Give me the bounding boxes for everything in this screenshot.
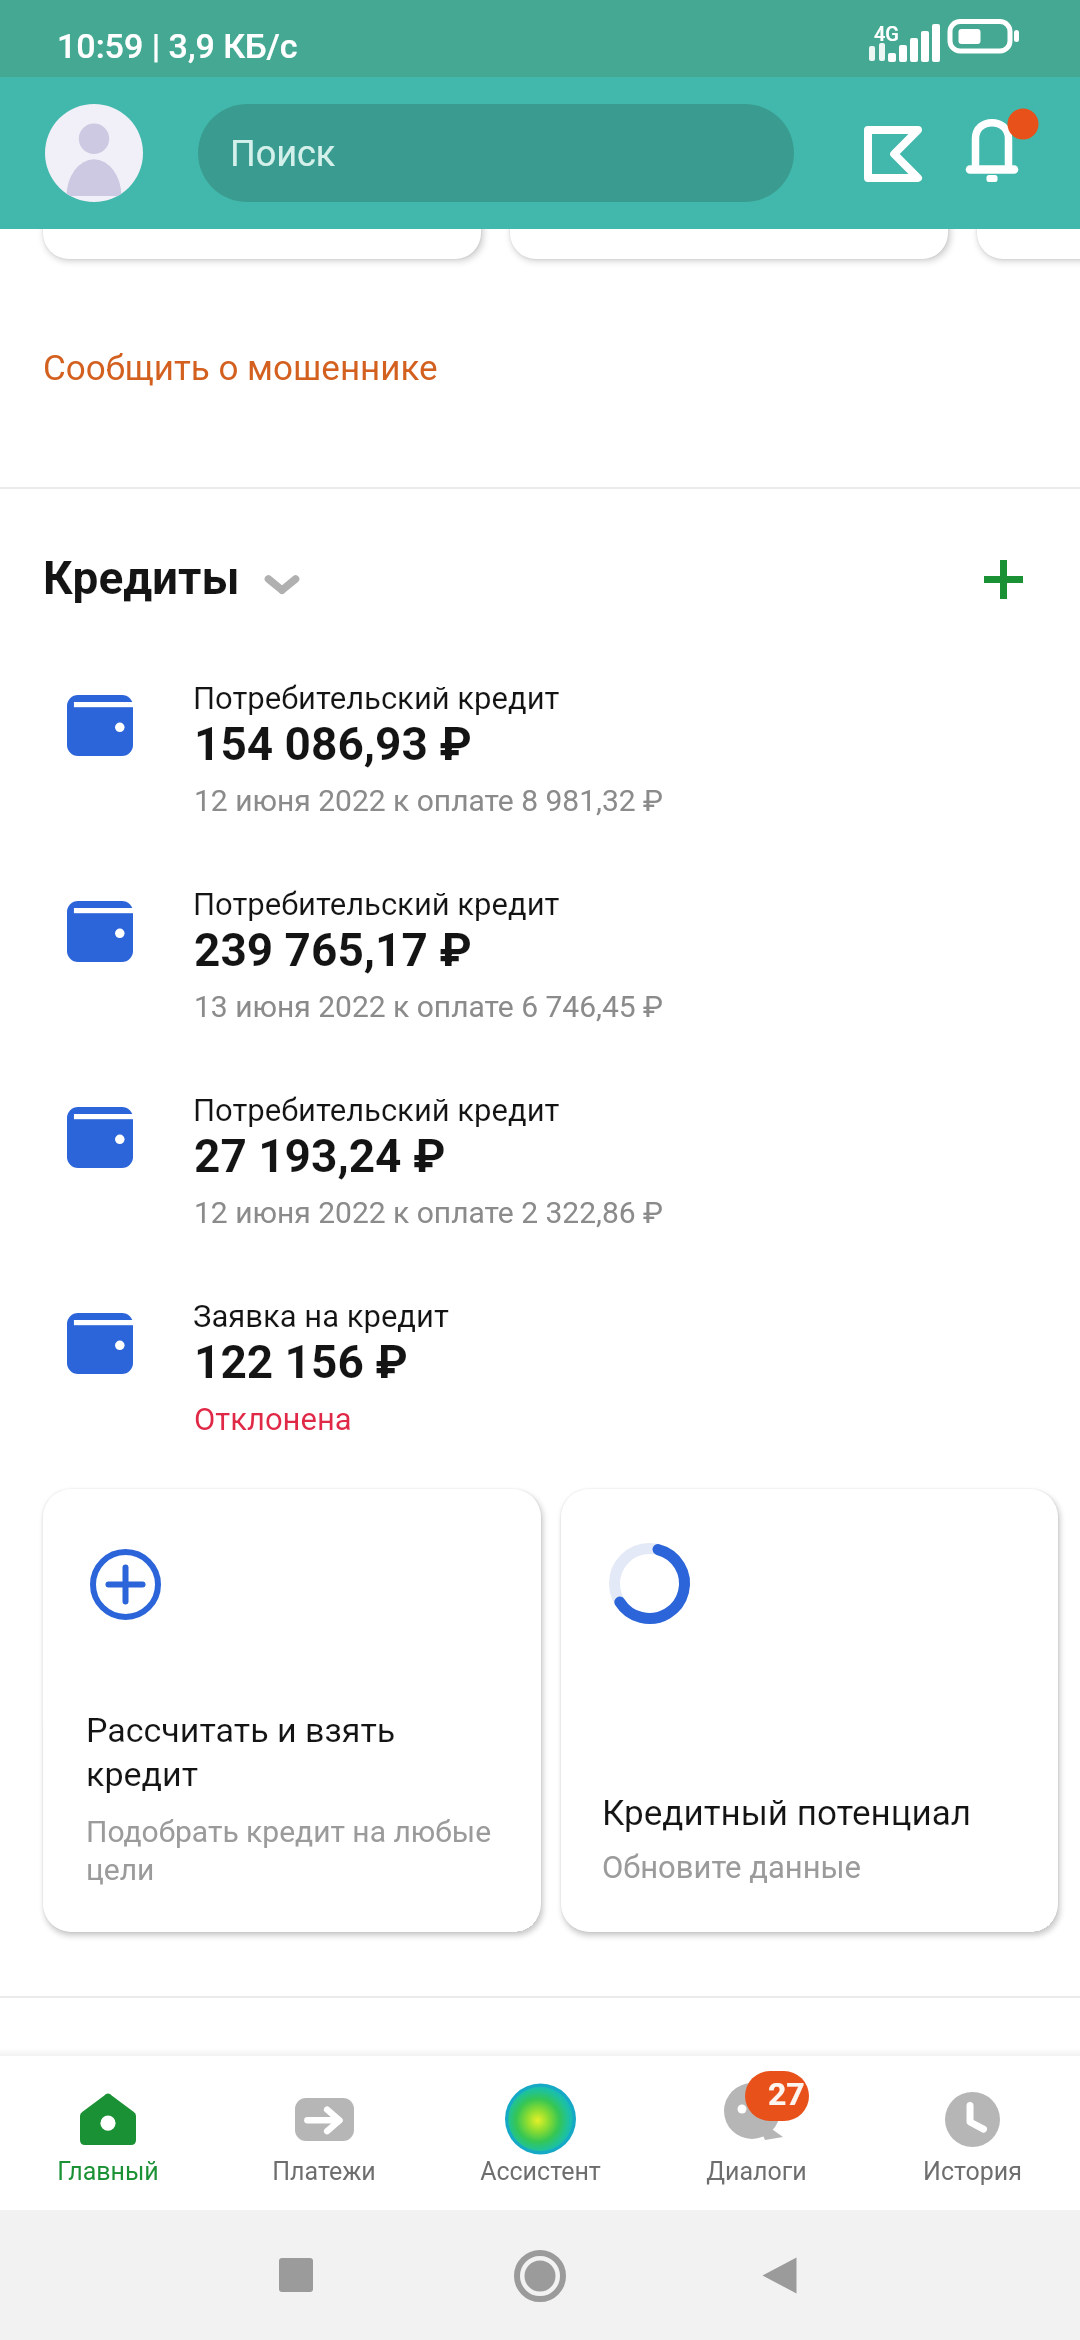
staticText: Заявка на кредит: [193, 1298, 449, 1334]
button[interactable]: Платежи: [216, 2056, 432, 2210]
staticText: 4G: [874, 22, 899, 45]
staticText: 239 765,17 ₽: [194, 923, 472, 977]
button[interactable]: Домой: [514, 2250, 566, 2302]
button[interactable]: Поиск: [198, 104, 794, 202]
staticText: Потребительский кредит: [193, 1092, 560, 1128]
button[interactable]: [510, 169, 948, 259]
button[interactable]: Потребительский кредит: [0, 1058, 1080, 1253]
staticText: Потребительский кредит: [193, 886, 560, 922]
button[interactable]: 27: [648, 2056, 864, 2210]
button[interactable]: Главный: [0, 2056, 216, 2210]
staticText: Главный: [57, 2157, 159, 2186]
button[interactable]: Профиль: [45, 104, 143, 202]
staticText: Сообщить о мошеннике: [43, 348, 438, 389]
button[interactable]: История: [864, 2056, 1080, 2210]
staticText: Обновите данные: [602, 1849, 862, 1885]
button[interactable]: Потребительский кредит: [0, 852, 1080, 1047]
staticText: Ассистент: [480, 2157, 601, 2186]
button[interactable]: Назад: [762, 2257, 797, 2294]
button[interactable]: Сообщить о мошеннике: [0, 300, 1080, 410]
staticText: 154 086,93 ₽: [194, 717, 472, 771]
button[interactable]: [43, 169, 481, 259]
button[interactable]: Кредитный потенциал: [561, 1489, 1058, 1932]
button[interactable]: [977, 169, 1080, 259]
staticText: Поиск: [230, 133, 336, 175]
staticText: Кредитный потенциал: [602, 1793, 971, 1834]
button[interactable]: Кредиты: [43, 551, 302, 605]
button[interactable]: Обзор: [279, 2258, 313, 2292]
button[interactable]: Уведомления: [941, 101, 1045, 205]
button[interactable]: Ассистент: [432, 2056, 648, 2210]
staticText: 27 193,24 ₽: [194, 1129, 446, 1183]
staticText: Платежи: [272, 2157, 376, 2186]
button[interactable]: СберСпасибо: [841, 102, 945, 206]
staticText: Потребительский кредит: [193, 680, 560, 716]
staticText: Диалоги: [706, 2157, 807, 2186]
staticText: 122 156 ₽: [194, 1335, 408, 1389]
button[interactable]: Добавить кредит: [959, 535, 1047, 623]
button[interactable]: Потребительский кредит: [0, 646, 1080, 841]
staticText: 10:59 | 3,9 КБ/с: [57, 26, 298, 66]
button[interactable]: Рассчитать и взять кредит: [43, 1489, 541, 1932]
staticText: Подобрать кредит на любые цели: [86, 1814, 492, 1887]
staticText: Отклонена: [194, 1401, 352, 1437]
staticText: 12 июня 2022 к оплате 2 322,86 ₽: [194, 1195, 664, 1230]
staticText: Рассчитать и взять кредит: [86, 1710, 396, 1794]
button[interactable]: Заявка на кредит: [0, 1264, 1080, 1459]
staticText: История: [923, 2157, 1022, 2186]
staticText: Кредиты: [43, 551, 240, 605]
staticText: 27: [768, 2075, 805, 2113]
staticText: 13 июня 2022 к оплате 6 746,45 ₽: [194, 989, 664, 1024]
staticText: 12 июня 2022 к оплате 8 981,32 ₽: [194, 783, 664, 818]
